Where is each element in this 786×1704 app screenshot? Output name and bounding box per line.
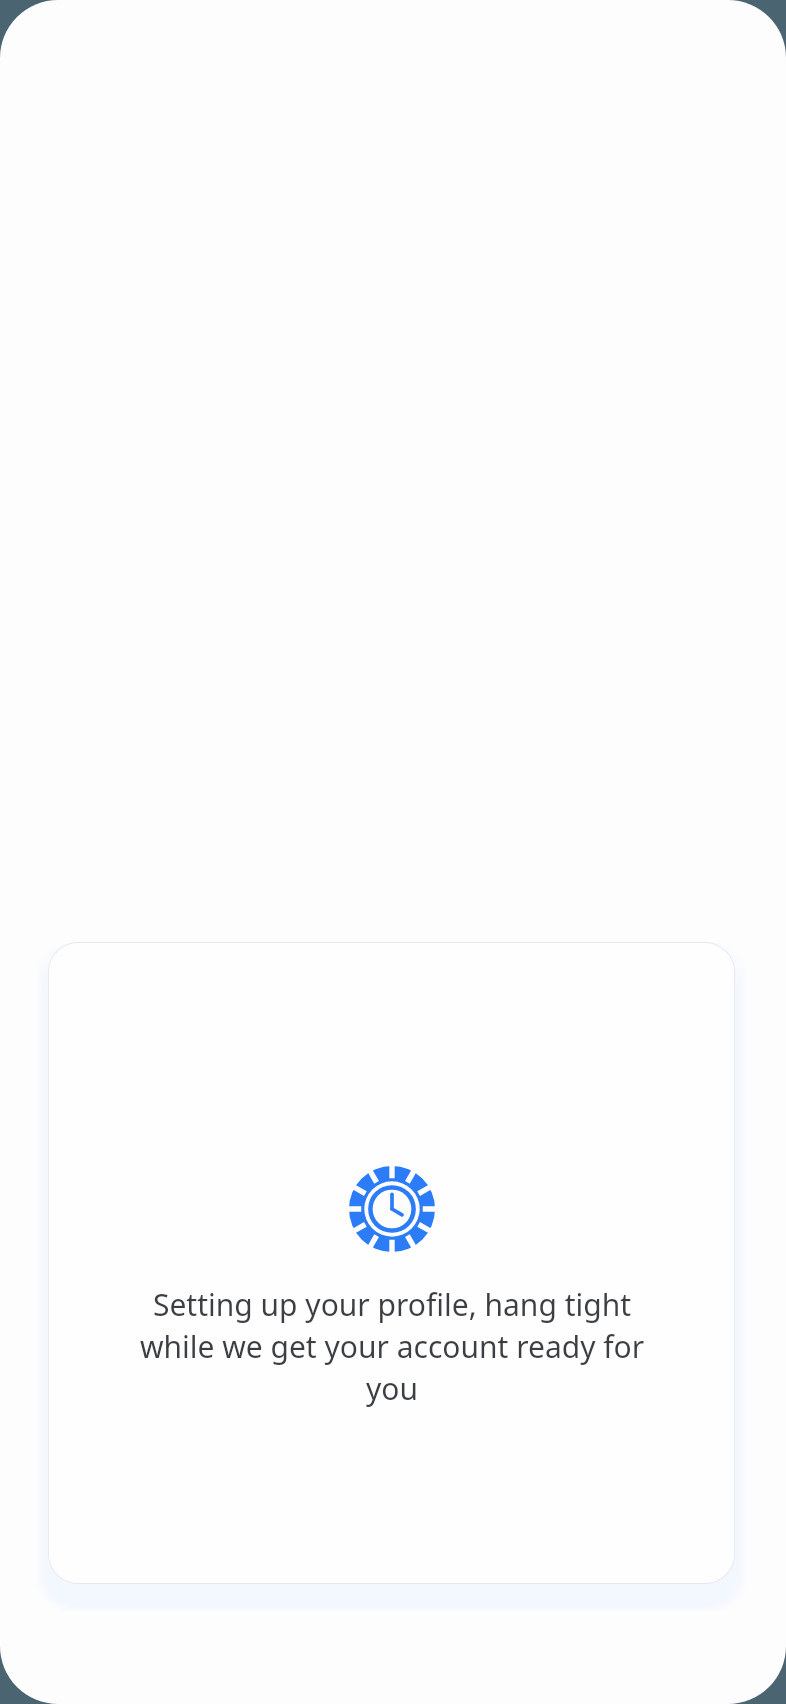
button[interactable]: Setting up profile [48,942,735,1584]
other: Setting up profile [349,1166,435,1252]
staticText: Setting up your profile, hang tight whil… [114,1284,670,1409]
